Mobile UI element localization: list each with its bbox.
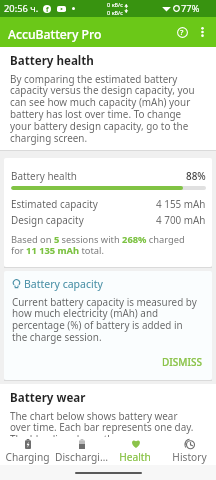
- staticText: 0 кБ/с: [107, 9, 123, 17]
- button[interactable]: DISMISS: [159, 353, 206, 371]
- staticText: The chart below shows battery wear over …: [10, 409, 196, 437]
- staticText: AccuBattery Pro: [8, 26, 171, 43]
- staticText: Dischargi…: [55, 450, 108, 464]
- staticText: Design capacity: [11, 213, 156, 226]
- staticText: 88%: [186, 169, 206, 182]
- button[interactable]: Charging: [0, 437, 54, 465]
- button[interactable]: Help: [171, 21, 193, 43]
- staticText: Current battery capacity is measured by …: [12, 295, 198, 344]
- staticText: Health: [119, 450, 151, 464]
- staticText: Estimated capacity: [11, 197, 156, 210]
- button[interactable]: Health: [108, 437, 162, 465]
- staticText: Battery health: [10, 53, 94, 69]
- staticText: 4 700 mAh: [156, 213, 206, 226]
- staticText: Charging: [5, 450, 50, 464]
- staticText: 0 кБ/с: [107, 1, 123, 9]
- staticText: DISMISS: [162, 355, 203, 369]
- staticText: By comparing the estimated battery capac…: [10, 72, 196, 145]
- button[interactable]: More options: [193, 23, 211, 41]
- staticText: History: [172, 450, 207, 464]
- staticText: 77%: [181, 2, 200, 15]
- staticText: ?: [180, 27, 184, 37]
- button[interactable]: History: [162, 437, 216, 465]
- staticText: Based on 5 sessions with 268% charged fo…: [11, 233, 185, 257]
- staticText: Battery capacity: [24, 277, 103, 291]
- staticText: 20:56 ч.: [4, 2, 39, 15]
- button[interactable]: Dischargi…: [54, 437, 108, 465]
- staticText: 4 155 mAh: [156, 197, 206, 210]
- staticText: f: [46, 5, 49, 13]
- staticText: Battery wear: [10, 390, 86, 406]
- staticText: Battery health: [11, 169, 186, 182]
